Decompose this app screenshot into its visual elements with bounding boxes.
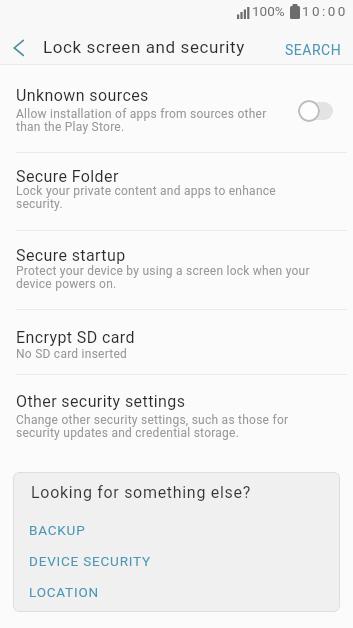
staticText: 10:00	[302, 3, 348, 19]
staticText: SEARCH	[285, 42, 342, 58]
button[interactable]: SEARCH	[272, 30, 353, 62]
button[interactable]: BACKUP	[29, 522, 86, 538]
button[interactable]: Unknown sources	[0, 65, 353, 152]
button[interactable]: LOCATION	[29, 584, 99, 600]
staticText: Change other security settings, such as …	[16, 413, 289, 427]
staticText: than the Play Store.	[16, 120, 125, 134]
staticText: device powers on.	[16, 277, 117, 291]
staticText: security.	[16, 197, 63, 211]
button[interactable]: Other security settings	[0, 374, 353, 450]
staticText: Lock your private content and apps to en…	[16, 184, 276, 198]
button[interactable]	[296, 98, 336, 124]
staticText: Secure Folder	[16, 167, 119, 186]
staticText: Looking for something else?	[31, 483, 251, 502]
staticText: Other security settings	[16, 392, 186, 411]
staticText: No SD card inserted	[16, 347, 128, 361]
staticText: 100%	[252, 3, 285, 19]
button[interactable]: Secure startup	[0, 230, 353, 309]
button[interactable]	[0, 26, 48, 64]
staticText: security updates and credential storage.	[16, 426, 240, 440]
staticText: Lock screen and security	[43, 37, 245, 57]
staticText: Allow installation of apps from sources …	[16, 107, 267, 121]
staticText: Protect your device by using a screen lo…	[16, 264, 310, 278]
button[interactable]: Encrypt SD card	[0, 309, 353, 374]
staticText: Secure startup	[16, 246, 126, 265]
staticText: Encrypt SD card	[16, 328, 135, 347]
button[interactable]: Secure Folder	[0, 152, 353, 230]
staticText: Unknown sources	[16, 86, 149, 105]
button[interactable]: DEVICE SECURITY	[29, 553, 151, 569]
